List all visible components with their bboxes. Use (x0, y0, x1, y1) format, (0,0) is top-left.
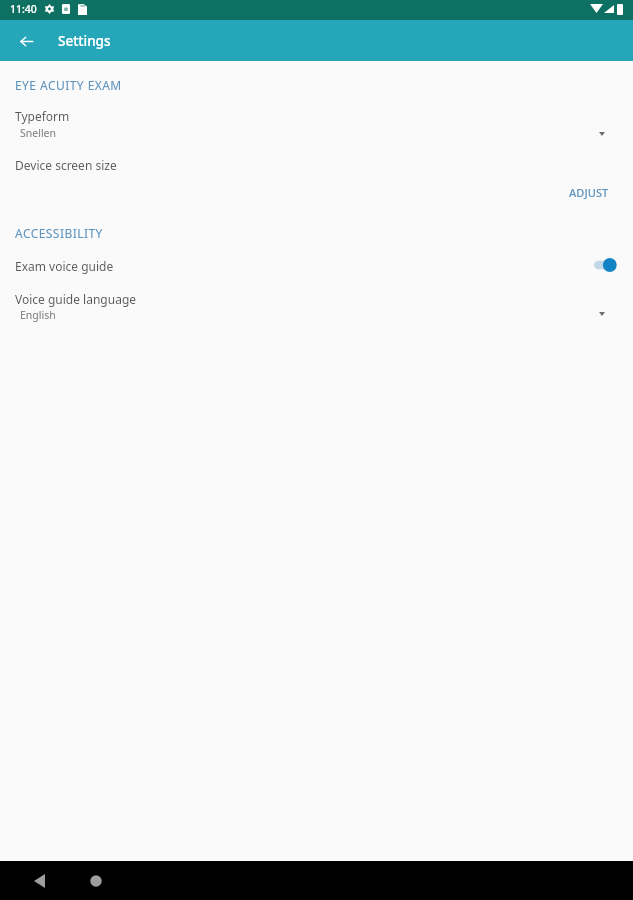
staticText: English (20, 308, 56, 322)
button[interactable]: Typeform (0, 102, 633, 142)
staticText: Exam voice guide (15, 258, 114, 274)
button[interactable]: ADJUST (563, 181, 615, 204)
button[interactable]: Home (78, 863, 113, 898)
staticText: Voice guide language (15, 291, 137, 307)
staticText: Typeform (15, 108, 70, 124)
button[interactable]: Exam voice guide (0, 251, 633, 279)
button[interactable]: Navigate up (8, 23, 44, 59)
staticText: Settings (58, 32, 111, 50)
button[interactable]: Device screen size (0, 149, 633, 171)
staticText: EYE ACUITY EXAM (15, 77, 122, 93)
button[interactable]: Back (22, 863, 57, 898)
button[interactable]: Voice guide language (0, 285, 633, 325)
staticText: Snellen (20, 126, 57, 140)
staticText: 11:40 (10, 2, 37, 16)
staticText: Device screen size (15, 157, 117, 173)
staticText: ADJUST (569, 185, 609, 200)
staticText: ACCESSIBILITY (15, 225, 103, 241)
